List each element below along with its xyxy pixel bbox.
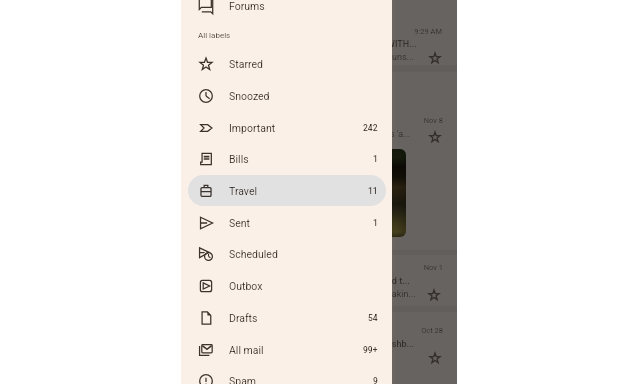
staticText: Spam: [229, 375, 257, 384]
staticText: 9:29 AM: [382, 27, 442, 36]
staticText: WITH...: [387, 39, 417, 50]
staticText: 11: [368, 186, 378, 196]
button[interactable]: Forums: [188, 0, 386, 21]
button[interactable]: Star: [428, 289, 440, 301]
staticText: Important: [229, 122, 276, 134]
button[interactable]: Scheduled: [188, 238, 386, 269]
staticText: All labels: [198, 31, 231, 40]
button[interactable]: Star: [429, 52, 441, 64]
button[interactable]: [379, 255, 457, 306]
staticText: Starred: [229, 58, 263, 70]
button[interactable]: Snoozed: [188, 80, 386, 111]
button[interactable]: Outbox: [188, 270, 386, 301]
button[interactable]: Drafts: [188, 302, 386, 333]
staticText: 9: [373, 376, 378, 384]
button[interactable]: Bills: [188, 143, 386, 174]
staticText: ed t...: [387, 276, 410, 287]
staticText: Sent: [229, 217, 251, 229]
button[interactable]: [379, 72, 457, 250]
staticText: Nov 8: [383, 116, 443, 125]
staticText: eakin...: [387, 289, 416, 300]
button[interactable]: Travel: [188, 175, 386, 206]
button[interactable]: All mail: [188, 334, 386, 365]
button[interactable]: Spam: [188, 365, 386, 384]
button[interactable]: Sent: [188, 207, 386, 238]
staticText: Drafts: [229, 312, 258, 324]
button[interactable]: [379, 312, 457, 384]
button[interactable]: Star: [429, 352, 441, 364]
button[interactable]: Star: [429, 131, 441, 143]
staticText: 242: [363, 123, 378, 133]
staticText: 99+: [363, 345, 378, 355]
staticText: ashb...: [387, 339, 415, 350]
staticText: Snoozed: [229, 90, 270, 102]
staticText: , uns...: [388, 52, 414, 63]
staticText: 54: [368, 313, 378, 323]
staticText: Bills: [229, 153, 249, 165]
staticText: Oct 28: [383, 326, 443, 335]
staticText: All mail: [229, 344, 264, 356]
button[interactable]: [379, 0, 457, 65]
staticText: Travel: [229, 185, 258, 197]
button[interactable]: Starred: [188, 48, 386, 79]
staticText: ts 'a...: [387, 129, 411, 140]
staticText: Forums: [229, 0, 265, 12]
staticText: 1: [373, 218, 378, 228]
staticText: Scheduled: [229, 248, 278, 260]
staticText: Nov 1: [383, 263, 443, 272]
staticText: 1: [373, 154, 378, 164]
staticText: Outbox: [229, 280, 263, 292]
button[interactable]: Important: [188, 112, 386, 143]
